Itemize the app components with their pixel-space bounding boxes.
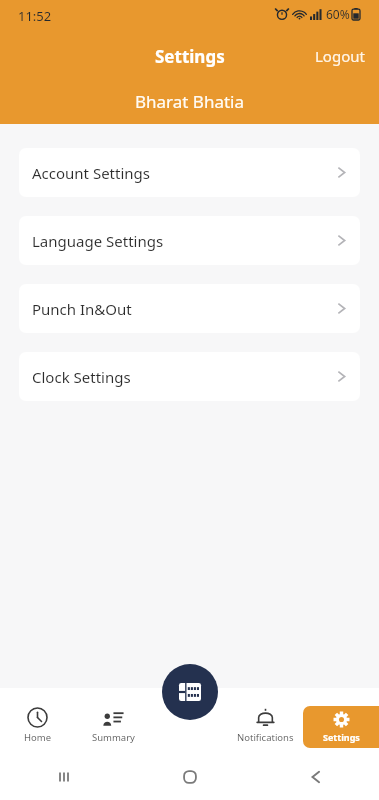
staticText: Punch In&Out [32, 299, 132, 319]
staticText: Bharat Bhatia [135, 90, 245, 113]
button[interactable]: Back [253, 754, 379, 800]
button[interactable]: Summary [75, 709, 151, 754]
button[interactable]: Language Settings [19, 216, 360, 265]
staticText: Summary [92, 731, 135, 744]
button[interactable]: Logout [301, 40, 379, 72]
button[interactable]: Timesheet [162, 664, 218, 720]
staticText: Account Settings [32, 163, 150, 183]
staticText: Notifications [237, 731, 294, 744]
staticText: Logout [315, 46, 365, 66]
staticText: Home [24, 731, 52, 744]
button[interactable]: Settings [303, 706, 379, 748]
staticText: 11:52 [18, 7, 52, 25]
staticText: Settings [323, 731, 360, 743]
staticText: Settings [155, 45, 225, 68]
button[interactable]: Home [0, 707, 75, 754]
staticText: Language Settings [32, 231, 164, 251]
staticText: 60% [326, 6, 350, 22]
staticText: Clock Settings [32, 367, 131, 387]
button[interactable]: Clock Settings [19, 352, 360, 401]
button[interactable]: Recents [0, 754, 127, 800]
button[interactable]: Home [127, 754, 253, 800]
button[interactable]: Punch In&Out [19, 284, 360, 333]
button[interactable]: Account Settings [19, 148, 360, 197]
button[interactable]: Notifications [227, 708, 303, 754]
